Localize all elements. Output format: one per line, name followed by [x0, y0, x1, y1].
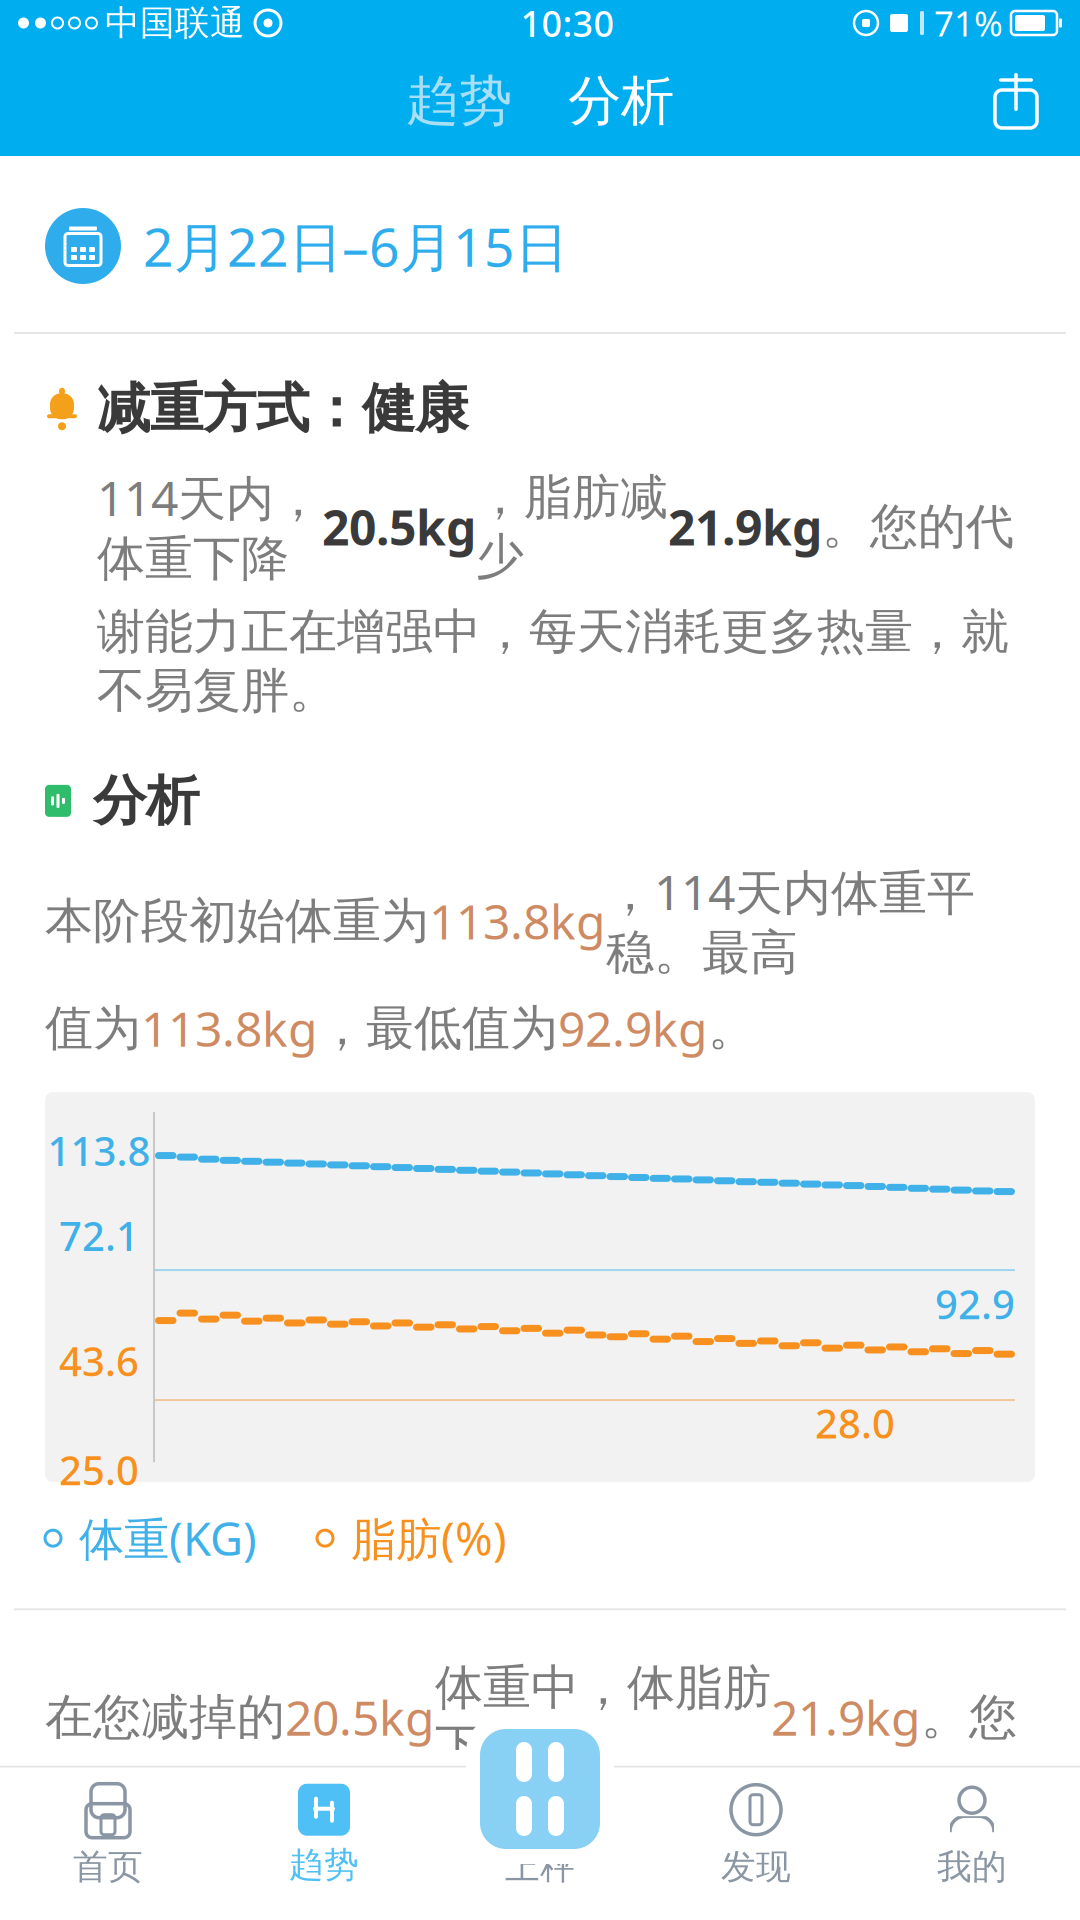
- staticText: 21.9kg: [771, 1685, 921, 1749]
- staticText: 113.8: [47, 1124, 150, 1177]
- staticText: 体重中，体脂肪下降了: [435, 1658, 771, 1776]
- button[interactable]: 趋势: [400, 58, 518, 144]
- staticText: 上秤: [505, 1846, 575, 1888]
- staticText: 在您减掉的: [45, 1688, 285, 1747]
- staticText: 谢能力正在增强中，每天消耗更多热量，就不易复胖。: [97, 602, 1009, 720]
- button[interactable]: 首页: [0, 1768, 216, 1904]
- staticText: 92.9kg: [558, 996, 708, 1060]
- staticText: 72.1: [59, 1209, 139, 1262]
- button[interactable]: 我的: [864, 1768, 1080, 1904]
- staticText: 脂肪(%): [351, 1508, 507, 1568]
- staticText: 25.0: [59, 1443, 139, 1496]
- staticText: ，114天内体重平稳。最高: [606, 860, 975, 982]
- staticText: 71%: [934, 0, 1003, 46]
- button[interactable]: 趋势: [216, 1770, 432, 1902]
- staticText: 20.5kg: [285, 1685, 435, 1749]
- staticText: 体重(KG): [79, 1508, 257, 1568]
- button[interactable]: 分享: [978, 63, 1054, 139]
- staticText: 分析: [93, 768, 199, 834]
- staticText: 趋势: [289, 1844, 359, 1886]
- staticText: 发现: [721, 1846, 791, 1888]
- staticText: 28.0: [815, 1396, 895, 1450]
- staticText: 21.9kg: [668, 495, 822, 559]
- staticText: 我的: [937, 1846, 1007, 1888]
- staticText: 20.5kg: [322, 495, 476, 559]
- staticText: 首页: [73, 1846, 143, 1888]
- button[interactable]: 分析: [562, 58, 680, 144]
- staticText: ，最低值为: [318, 999, 558, 1058]
- staticText: 。您: [921, 1688, 1017, 1747]
- staticText: 的代谢能力正在增强中，每天消耗更多热量，就不易: [45, 1790, 1005, 1908]
- staticText: 值为: [45, 999, 141, 1058]
- button[interactable]: 2月22日–6月15日: [0, 156, 1080, 332]
- staticText: 92.9: [935, 1277, 1015, 1330]
- staticText: ，脂肪减少: [476, 468, 668, 586]
- staticText: 分析: [568, 68, 674, 134]
- staticText: 。您的代: [822, 497, 1014, 556]
- staticText: 113.8kg: [141, 996, 318, 1060]
- staticText: 。: [708, 999, 756, 1058]
- staticText: 趋势: [406, 68, 512, 134]
- button[interactable]: 上秤: [466, 1714, 614, 1864]
- staticText: 2月22日–6月15日: [143, 211, 568, 281]
- staticText: 114天内，体重下降: [97, 465, 322, 588]
- staticText: 113.8kg: [429, 889, 606, 953]
- button[interactable]: 发现: [648, 1768, 864, 1904]
- staticText: 减重方式：健康: [97, 376, 468, 441]
- staticText: 43.6: [59, 1334, 139, 1387]
- staticText: 本阶段初始体重为: [45, 891, 429, 950]
- staticText: 10:30: [520, 0, 614, 47]
- staticText: 中国联通: [105, 2, 245, 44]
